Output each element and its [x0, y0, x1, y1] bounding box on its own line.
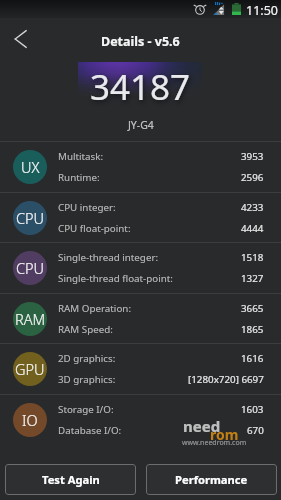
button[interactable]: Performance: [146, 464, 277, 495]
staticText: 3953: [241, 150, 264, 163]
button[interactable]: GPU: [0, 343, 281, 394]
staticText: 1518: [241, 251, 264, 264]
staticText: RAM: [15, 309, 46, 329]
staticText: 2596: [241, 171, 264, 184]
button[interactable]: UX: [0, 141, 281, 192]
staticText: need: [183, 416, 221, 436]
staticText: CPU: [16, 208, 45, 228]
button[interactable]: IO: [0, 394, 281, 445]
staticText: 1616: [241, 352, 264, 365]
staticText: 4233: [241, 201, 264, 214]
staticText: CPU integer:: [58, 201, 116, 214]
staticText: 1865: [241, 323, 264, 336]
staticText: 1327: [241, 272, 264, 285]
staticText: RAM Operation:: [58, 302, 132, 315]
staticText: Details - v5.6: [101, 33, 180, 50]
staticText: Database I/O:: [58, 424, 122, 437]
staticText: [1280x720] 6697: [188, 373, 264, 386]
staticText: Multitask:: [58, 150, 104, 163]
staticText: CPU: [16, 258, 45, 278]
button[interactable]: RAM: [0, 293, 281, 344]
staticText: 3D graphics:: [58, 373, 116, 386]
button[interactable]: Back: [4, 22, 38, 56]
staticText: CPU float-point:: [58, 222, 131, 235]
button[interactable]: CPU: [0, 192, 281, 243]
staticText: 34187: [90, 63, 191, 111]
staticText: RAM Speed:: [58, 323, 113, 336]
staticText: UX: [21, 157, 40, 177]
staticText: Runtime:: [58, 171, 100, 184]
staticText: Single-thread integer:: [58, 251, 159, 264]
staticText: 11:50: [246, 2, 278, 19]
staticText: www.needrom.com: [182, 438, 247, 448]
staticText: 3665: [241, 302, 264, 315]
staticText: GPU: [15, 359, 45, 379]
staticText: Storage I/O:: [58, 403, 114, 416]
staticText: 1603: [241, 403, 264, 416]
staticText: IO: [22, 410, 38, 430]
staticText: 4444: [241, 222, 264, 235]
staticText: 670: [247, 424, 264, 437]
button[interactable]: CPU: [0, 242, 281, 293]
staticText: JY-G4: [128, 118, 154, 132]
staticText: Test Again: [42, 472, 100, 487]
staticText: 2D graphics:: [58, 352, 116, 365]
staticText: Performance: [175, 472, 248, 487]
button[interactable]: Test Again: [5, 464, 136, 495]
staticText: Single-thread float-point:: [58, 272, 173, 285]
staticText: rom: [210, 425, 239, 444]
